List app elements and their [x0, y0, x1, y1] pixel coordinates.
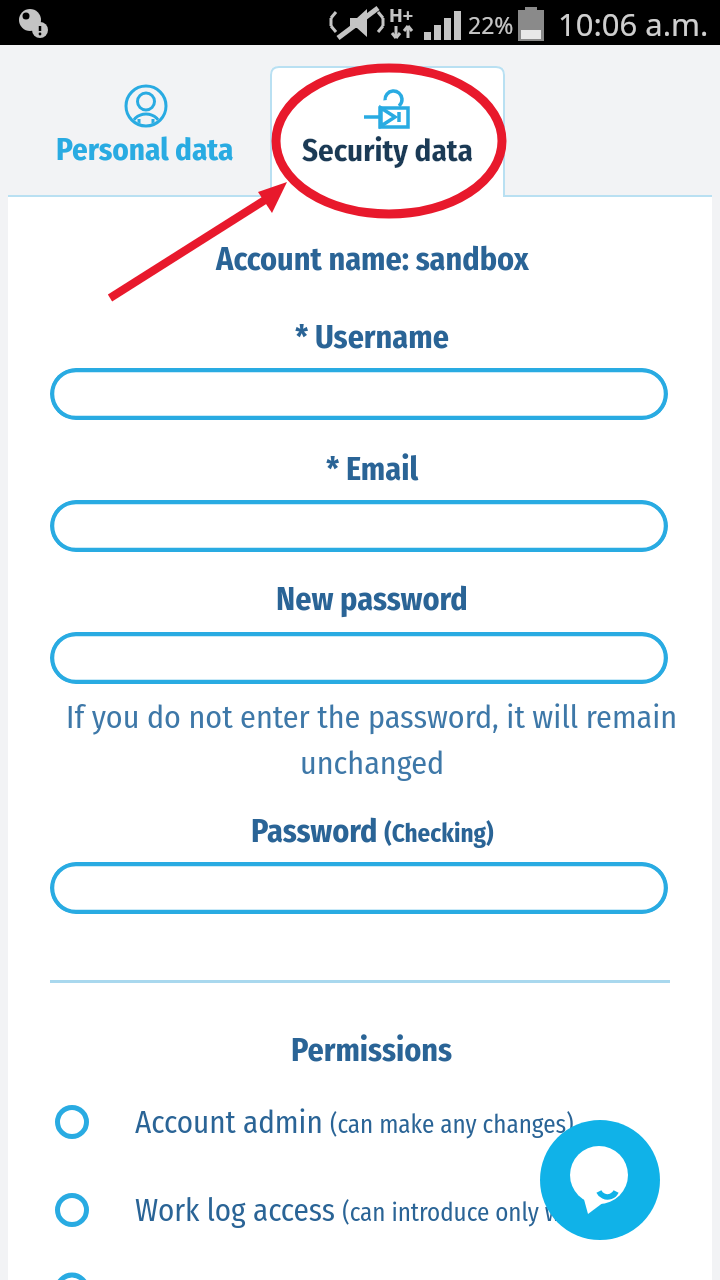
button[interactable]: Personal data [20, 60, 270, 195]
staticText: unchanged [300, 744, 445, 782]
staticText: Security data [302, 132, 473, 169]
button[interactable]: Account admin (can make any changes) [55, 1100, 655, 1144]
button[interactable]: Security data [270, 66, 505, 197]
staticText: Permissions [291, 1031, 453, 1069]
staticText: 22% [468, 9, 514, 40]
staticText: H+ [389, 3, 414, 28]
staticText: * Username [295, 318, 449, 356]
button[interactable] [50, 500, 668, 552]
staticText: Work log access (can introduce only wor [135, 1192, 584, 1229]
button[interactable] [50, 632, 668, 684]
staticText: Password (Checking) [251, 812, 494, 850]
button[interactable] [540, 1120, 660, 1240]
button[interactable] [50, 862, 668, 914]
staticText: Account admin (can make any changes) [135, 1104, 574, 1141]
staticText: 10:06 a.m. [558, 3, 709, 45]
staticText: * Email [326, 450, 419, 488]
staticText: New password [276, 580, 468, 618]
button[interactable] [50, 368, 668, 420]
staticText: Personal data [56, 131, 234, 168]
staticText: If you do not enter the password, it wil… [66, 698, 678, 736]
button[interactable]: Work log access (can introduce only wor [55, 1188, 655, 1232]
staticText: Account name: sandbox [216, 240, 529, 278]
